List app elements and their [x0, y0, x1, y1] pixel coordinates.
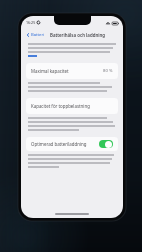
staticText: Batteri	[31, 32, 45, 38]
staticText: 80 %	[103, 68, 113, 74]
button[interactable]: Kapacitet för toppbelastning	[26, 98, 118, 114]
button[interactable]: Back to Batteri	[25, 31, 46, 39]
button[interactable]: Optimerad batteriladdning	[26, 137, 118, 151]
staticText: Optimerad batteriladdning	[31, 141, 87, 147]
staticText: 16:25	[26, 20, 36, 25]
staticText: Kapacitet för toppbelastning	[31, 103, 90, 109]
button[interactable]: Optimerad batteriladdning toggle, on	[99, 140, 113, 148]
staticText: Maximal kapacitet	[31, 68, 69, 74]
staticText: Batterihälsa och laddning	[50, 32, 105, 38]
button[interactable]: Maximal kapacitet	[26, 63, 118, 79]
